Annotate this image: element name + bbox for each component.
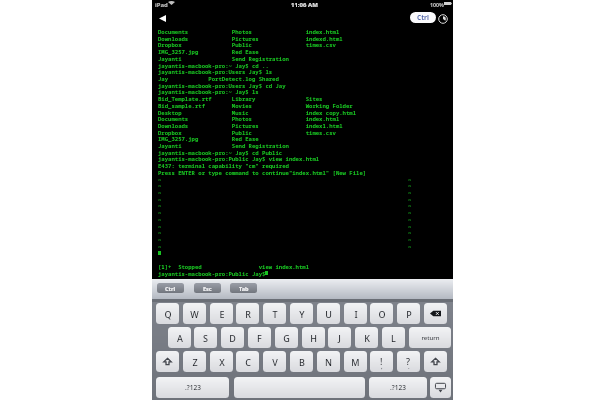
button[interactable]: I <box>344 303 367 324</box>
staticText: Bid_sample.rtf Movies Working Folder <box>158 102 353 110</box>
button[interactable]: Back <box>154 11 170 25</box>
staticText: jayantis-macbook-pro:Public Jay$ view in… <box>158 155 320 163</box>
staticText: ~ <box>158 196 162 204</box>
button[interactable]: ? <box>397 351 420 372</box>
button[interactable] <box>234 377 365 398</box>
staticText: Desktop Music index copy.html <box>158 109 357 117</box>
staticText: Ctrl <box>417 13 429 22</box>
staticText: F <box>257 332 262 344</box>
staticText: Press ENTER or type command to continue"… <box>158 169 367 177</box>
button[interactable]: V <box>263 351 286 372</box>
staticText: Q <box>164 308 172 320</box>
staticText: Esc <box>203 285 212 292</box>
staticText: .?123 <box>185 383 201 392</box>
button[interactable]: X <box>210 351 233 372</box>
button[interactable]: Hide keyboard <box>430 377 451 398</box>
button[interactable]: S <box>194 327 217 348</box>
staticText: ~ <box>408 243 412 251</box>
staticText: ~ <box>408 189 412 197</box>
staticText: E <box>219 308 225 320</box>
staticText: T <box>272 308 278 320</box>
staticText: 11:06 AM <box>291 1 318 9</box>
staticText: ~ <box>408 182 412 190</box>
button[interactable]: R <box>236 303 259 324</box>
staticText: ~ <box>158 243 162 251</box>
staticText: .?123 <box>390 383 406 392</box>
button[interactable]: .?123 <box>369 377 427 398</box>
button[interactable]: D <box>221 327 244 348</box>
staticText: jayantis-macbook-pro:~ Jay$ cd Public <box>158 149 283 157</box>
staticText: A <box>177 332 183 344</box>
button[interactable]: O <box>370 303 393 324</box>
staticText: H <box>310 332 317 344</box>
staticText: ~ <box>408 223 412 231</box>
staticText: K <box>364 332 370 344</box>
button[interactable]: C <box>236 351 259 372</box>
staticText: ~ <box>158 223 162 231</box>
button[interactable]: .?123 <box>156 377 229 398</box>
staticText: I <box>354 308 358 320</box>
staticText: X <box>219 356 225 368</box>
staticText: ! <box>380 355 383 367</box>
button[interactable]: Ctrl <box>410 12 436 23</box>
staticText: Dropbox Public times.csv <box>158 41 336 49</box>
button[interactable]: ! <box>370 351 393 372</box>
staticText: ~ <box>158 202 162 210</box>
button[interactable]: Q <box>156 303 179 324</box>
button[interactable]: G <box>275 327 298 348</box>
button[interactable]: H <box>302 327 325 348</box>
staticText: Y <box>299 308 305 320</box>
button[interactable]: return <box>409 327 451 348</box>
button[interactable]: Z <box>183 351 206 372</box>
staticText: Dropbox Public times.csv <box>158 129 336 137</box>
staticText: Jayanti Send Registration <box>158 55 289 63</box>
button[interactable]: P <box>397 303 420 324</box>
button[interactable]: History <box>436 12 449 25</box>
staticText: , <box>381 363 383 371</box>
button[interactable]: Backspace <box>424 303 447 324</box>
button[interactable]: N <box>317 351 340 372</box>
staticText: ~ <box>158 209 162 217</box>
button[interactable]: B <box>290 351 313 372</box>
staticText: jayantis-macbook-pro:Public Jay$ <box>158 270 266 278</box>
staticText: ~ <box>408 229 412 237</box>
staticText: iPad <box>155 1 168 9</box>
button[interactable]: Shift <box>156 351 179 372</box>
staticText: Tab <box>239 285 249 292</box>
button[interactable]: F <box>248 327 271 348</box>
button[interactable]: J <box>328 327 351 348</box>
button[interactable]: Shift <box>424 351 447 372</box>
staticText: ~ <box>408 209 412 217</box>
staticText: ? <box>406 355 411 367</box>
button[interactable]: A <box>168 327 191 348</box>
staticText: Documents Photos index.html <box>158 28 340 36</box>
button[interactable]: Y <box>290 303 313 324</box>
staticText: V <box>272 356 278 368</box>
staticText: P <box>406 308 412 320</box>
staticText: B <box>299 356 305 368</box>
staticText: W <box>190 308 199 320</box>
staticText: Downloads Pictures indexd.html <box>158 35 343 43</box>
button[interactable]: L <box>382 327 405 348</box>
staticText: Jayanti Send Registration <box>158 142 289 150</box>
button[interactable]: Tab <box>230 283 257 293</box>
staticText: ~ <box>408 196 412 204</box>
button[interactable]: K <box>355 327 378 348</box>
staticText: N <box>325 356 332 368</box>
button[interactable]: Ctrl <box>157 283 184 293</box>
staticText: IMG_3257.jpg Red Ease <box>158 135 259 143</box>
button[interactable]: E <box>210 303 233 324</box>
staticText: M <box>351 356 360 368</box>
button[interactable]: M <box>344 351 367 372</box>
staticText: C <box>245 356 251 368</box>
staticText: jayantis-macbook-pro:~ Jay$ cd .. <box>158 62 269 70</box>
button[interactable]: T <box>263 303 286 324</box>
staticText: U <box>325 308 332 320</box>
staticText: Ctrl <box>165 285 176 292</box>
staticText: 100% <box>430 1 444 8</box>
button[interactable]: W <box>183 303 206 324</box>
staticText: ~ <box>158 216 162 224</box>
staticText: L <box>391 332 396 344</box>
button[interactable]: U <box>317 303 340 324</box>
button[interactable]: Esc <box>194 283 221 293</box>
